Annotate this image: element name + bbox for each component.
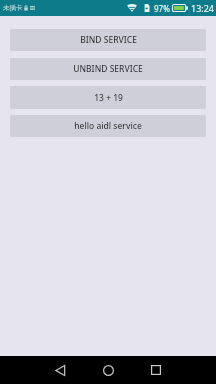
- button[interactable]: Back: [42, 356, 78, 384]
- button[interactable]: UNBIND SERVICE: [10, 58, 206, 80]
- staticText: 13:24: [191, 2, 215, 14]
- staticText: hello aidl service: [74, 120, 142, 132]
- button[interactable]: 13 + 19: [10, 86, 206, 109]
- staticText: UNBIND SERVICE: [73, 63, 143, 75]
- button[interactable]: Recent apps: [138, 356, 174, 384]
- staticText: BIND SERVICE: [80, 34, 137, 46]
- button[interactable]: Home: [90, 356, 126, 384]
- staticText: 未插卡: [3, 4, 23, 12]
- button[interactable]: hello aidl service: [10, 115, 206, 137]
- button[interactable]: BIND SERVICE: [10, 29, 206, 51]
- staticText: 13 + 19: [94, 92, 123, 104]
- staticText: 97%: [154, 3, 170, 14]
